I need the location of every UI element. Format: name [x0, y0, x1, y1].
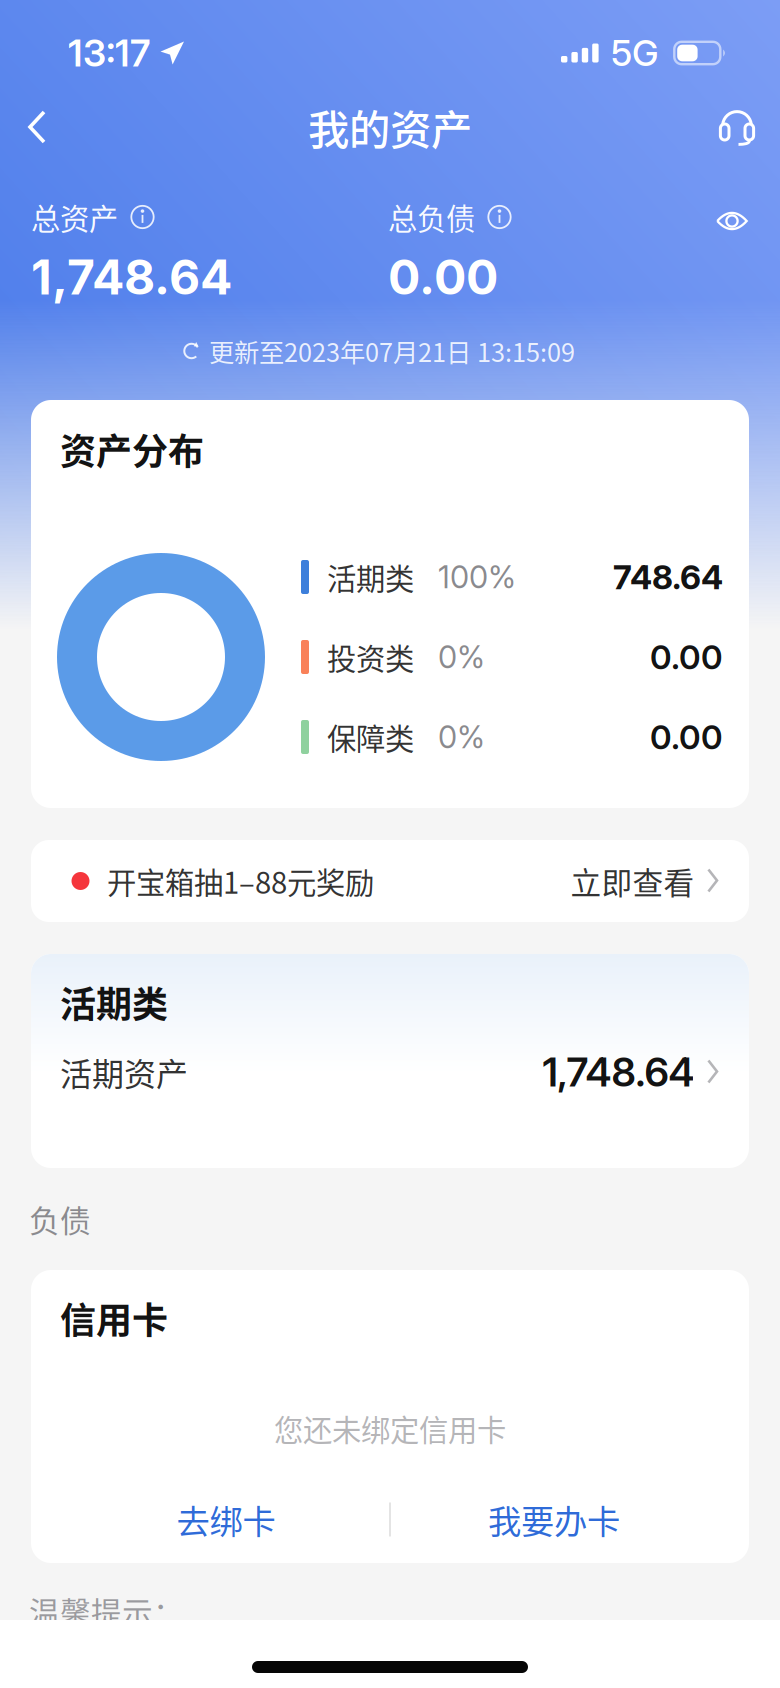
staticText: 温馨提示：: [29, 1589, 184, 1633]
staticText: 负债: [29, 1197, 91, 1241]
staticText: 我要办卡: [488, 1495, 620, 1544]
button[interactable]: 我要办卡: [390, 1488, 718, 1550]
staticText: 0%: [438, 718, 485, 755]
staticText: 活期资产: [60, 1049, 188, 1095]
button[interactable]: Toggle balance visibility: [696, 191, 768, 251]
button[interactable]: Customer service: [694, 93, 780, 161]
staticText: 您还未绑定信用卡: [274, 1407, 506, 1449]
staticText: 总负债: [388, 196, 475, 238]
staticText: 活期类: [327, 556, 414, 598]
button[interactable]: Back: [0, 93, 76, 161]
staticText: 更新至2023年07月21日 13:15:09: [209, 333, 575, 369]
staticText: 100%: [438, 558, 516, 595]
staticText: 活期类: [60, 976, 168, 1028]
button[interactable]: 活期资产: [31, 1025, 749, 1119]
staticText: 保障类: [327, 716, 414, 758]
button[interactable]: 去绑卡: [62, 1488, 390, 1550]
button[interactable]: 开宝箱抽1–88元奖励: [31, 840, 749, 922]
staticText: 5G: [611, 31, 659, 75]
staticText: 0%: [438, 638, 485, 675]
staticText: 748.64: [613, 557, 723, 597]
staticText: 去绑卡: [176, 1495, 275, 1544]
staticText: 立即查看: [570, 859, 694, 903]
staticText: 信用卡: [60, 1292, 168, 1344]
staticText: 1,748.64: [542, 1048, 694, 1096]
staticText: 投资类: [327, 636, 414, 678]
staticText: 0.00: [650, 637, 723, 677]
staticText: 开宝箱抽1–88元奖励: [107, 860, 374, 902]
staticText: 0.00: [650, 717, 723, 757]
staticText: 13:17: [68, 30, 150, 76]
staticText: 总资产: [31, 196, 118, 238]
staticText: 资产分布: [60, 423, 204, 475]
staticText: 我的资产: [308, 97, 472, 157]
staticText: 1,748.64: [31, 248, 232, 306]
staticText: 0.00: [388, 248, 498, 306]
